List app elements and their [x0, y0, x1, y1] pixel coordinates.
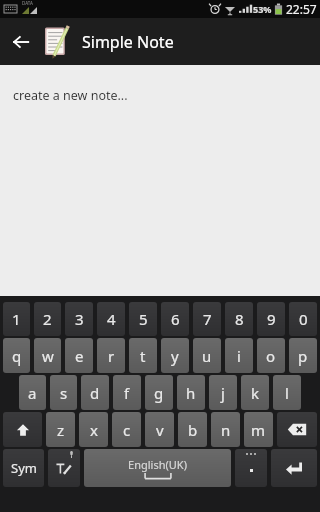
button[interactable]: l: [273, 375, 301, 410]
button[interactable]: 8: [225, 302, 253, 336]
staticText: f: [124, 383, 130, 403]
staticText: English(UK): [128, 457, 187, 472]
staticText: Sym: [11, 459, 37, 477]
button[interactable]: w: [34, 338, 61, 373]
staticText: v: [156, 420, 164, 440]
button[interactable]: h: [177, 375, 205, 410]
button[interactable]: 3: [65, 302, 93, 336]
button[interactable]: z: [46, 412, 75, 447]
staticText: create a new note...: [13, 87, 128, 104]
staticText: 3: [75, 309, 84, 329]
staticText: 6: [171, 309, 180, 329]
button[interactable]: a: [19, 375, 46, 410]
button[interactable]: Period: [235, 449, 267, 487]
button[interactable]: Enter: [271, 449, 317, 487]
button[interactable]: r: [97, 338, 125, 373]
staticText: 53%: [253, 3, 272, 15]
staticText: s: [60, 383, 68, 403]
button[interactable]: 0: [289, 302, 317, 336]
button[interactable]: f: [113, 375, 141, 410]
button[interactable]: x: [79, 412, 108, 447]
staticText: i: [237, 346, 241, 366]
staticText: 1: [12, 309, 21, 329]
button[interactable]: 9: [257, 302, 285, 336]
button[interactable]: u: [193, 338, 221, 373]
staticText: 0: [299, 309, 308, 329]
staticText: j: [221, 383, 225, 403]
staticText: k: [251, 383, 260, 403]
staticText: n: [221, 420, 231, 440]
button[interactable]: j: [209, 375, 237, 410]
staticText: c: [123, 420, 131, 440]
staticText: u: [202, 346, 212, 366]
staticText: a: [28, 383, 37, 403]
button[interactable]: t: [129, 338, 157, 373]
staticText: h: [186, 383, 196, 403]
staticText: g: [154, 383, 164, 403]
button[interactable]: p: [289, 338, 317, 373]
staticText: z: [57, 420, 65, 440]
button[interactable]: d: [81, 375, 109, 410]
staticText: w: [42, 346, 54, 366]
button[interactable]: c: [112, 412, 141, 447]
button[interactable]: 1: [3, 302, 30, 336]
button[interactable]: 4: [97, 302, 125, 336]
staticText: 5: [139, 309, 148, 329]
staticText: m: [251, 420, 266, 440]
button[interactable]: s: [50, 375, 77, 410]
staticText: r: [108, 346, 115, 366]
button[interactable]: g: [145, 375, 173, 410]
staticText: x: [90, 420, 98, 440]
staticText: DATA: [22, 0, 33, 6]
button[interactable]: o: [257, 338, 285, 373]
staticText: 7: [203, 309, 212, 329]
button[interactable]: Back: [0, 21, 42, 63]
button[interactable]: 6: [161, 302, 189, 336]
button[interactable]: n: [211, 412, 240, 447]
button[interactable]: Handwriting: [48, 449, 80, 487]
staticText: 2: [43, 309, 52, 329]
staticText: 8: [235, 309, 244, 329]
button[interactable]: Shift: [3, 412, 42, 447]
staticText: 22:57: [286, 1, 317, 17]
button[interactable]: k: [241, 375, 269, 410]
button[interactable]: Sym: [3, 449, 44, 487]
staticText: Simple Note: [82, 31, 174, 53]
button[interactable]: English(UK): [84, 449, 231, 487]
staticText: q: [12, 346, 22, 366]
staticText: p: [298, 346, 308, 366]
staticText: 4: [107, 309, 116, 329]
button[interactable]: 7: [193, 302, 221, 336]
button[interactable]: q: [3, 338, 30, 373]
staticText: b: [188, 420, 198, 440]
button[interactable]: Backspace: [277, 412, 317, 447]
staticText: o: [266, 346, 276, 366]
button[interactable]: e: [65, 338, 93, 373]
button[interactable]: 2: [34, 302, 61, 336]
staticText: t: [140, 346, 146, 366]
staticText: d: [90, 383, 100, 403]
staticText: y: [171, 346, 179, 366]
button[interactable]: m: [244, 412, 273, 447]
button[interactable]: y: [161, 338, 189, 373]
button[interactable]: i: [225, 338, 253, 373]
button[interactable]: v: [145, 412, 174, 447]
staticText: e: [75, 346, 84, 366]
button[interactable]: 5: [129, 302, 157, 336]
button[interactable]: b: [178, 412, 207, 447]
staticText: 9: [267, 309, 276, 329]
staticText: l: [285, 383, 289, 403]
